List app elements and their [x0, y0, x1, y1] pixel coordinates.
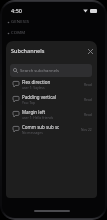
staticText: user 1: Sayless: [22, 85, 45, 89]
button[interactable]: Margin left: [6, 106, 97, 121]
staticText: 4:50: [11, 7, 22, 14]
staticText: user 1: Hello friends: [22, 115, 54, 119]
staticText: Read: [84, 82, 92, 86]
button[interactable]: Flex direction: [6, 76, 97, 91]
button[interactable]: Close: [83, 44, 97, 58]
staticText: Read: [84, 112, 92, 116]
staticText: GENESIS: [11, 19, 30, 25]
staticText: You: Top: [22, 100, 36, 104]
staticText: Padding vertical: [22, 94, 56, 100]
staticText: Read: [84, 97, 92, 101]
staticText: Nov 22: [81, 127, 92, 131]
staticText: Search subchannels: [20, 68, 60, 74]
staticText: COMM: [11, 30, 26, 36]
button[interactable]: Padding vertical: [6, 91, 97, 106]
staticText: No messages: [22, 130, 43, 134]
button[interactable]: Comm sub sub sc: [6, 121, 97, 136]
staticText: Comm sub sub sc: [22, 124, 60, 130]
staticText: Subchannels: [11, 47, 45, 54]
staticText: Flex direction: [22, 79, 51, 85]
staticText: Margin left: [22, 109, 46, 115]
button[interactable]: Search subchannels: [10, 64, 92, 77]
